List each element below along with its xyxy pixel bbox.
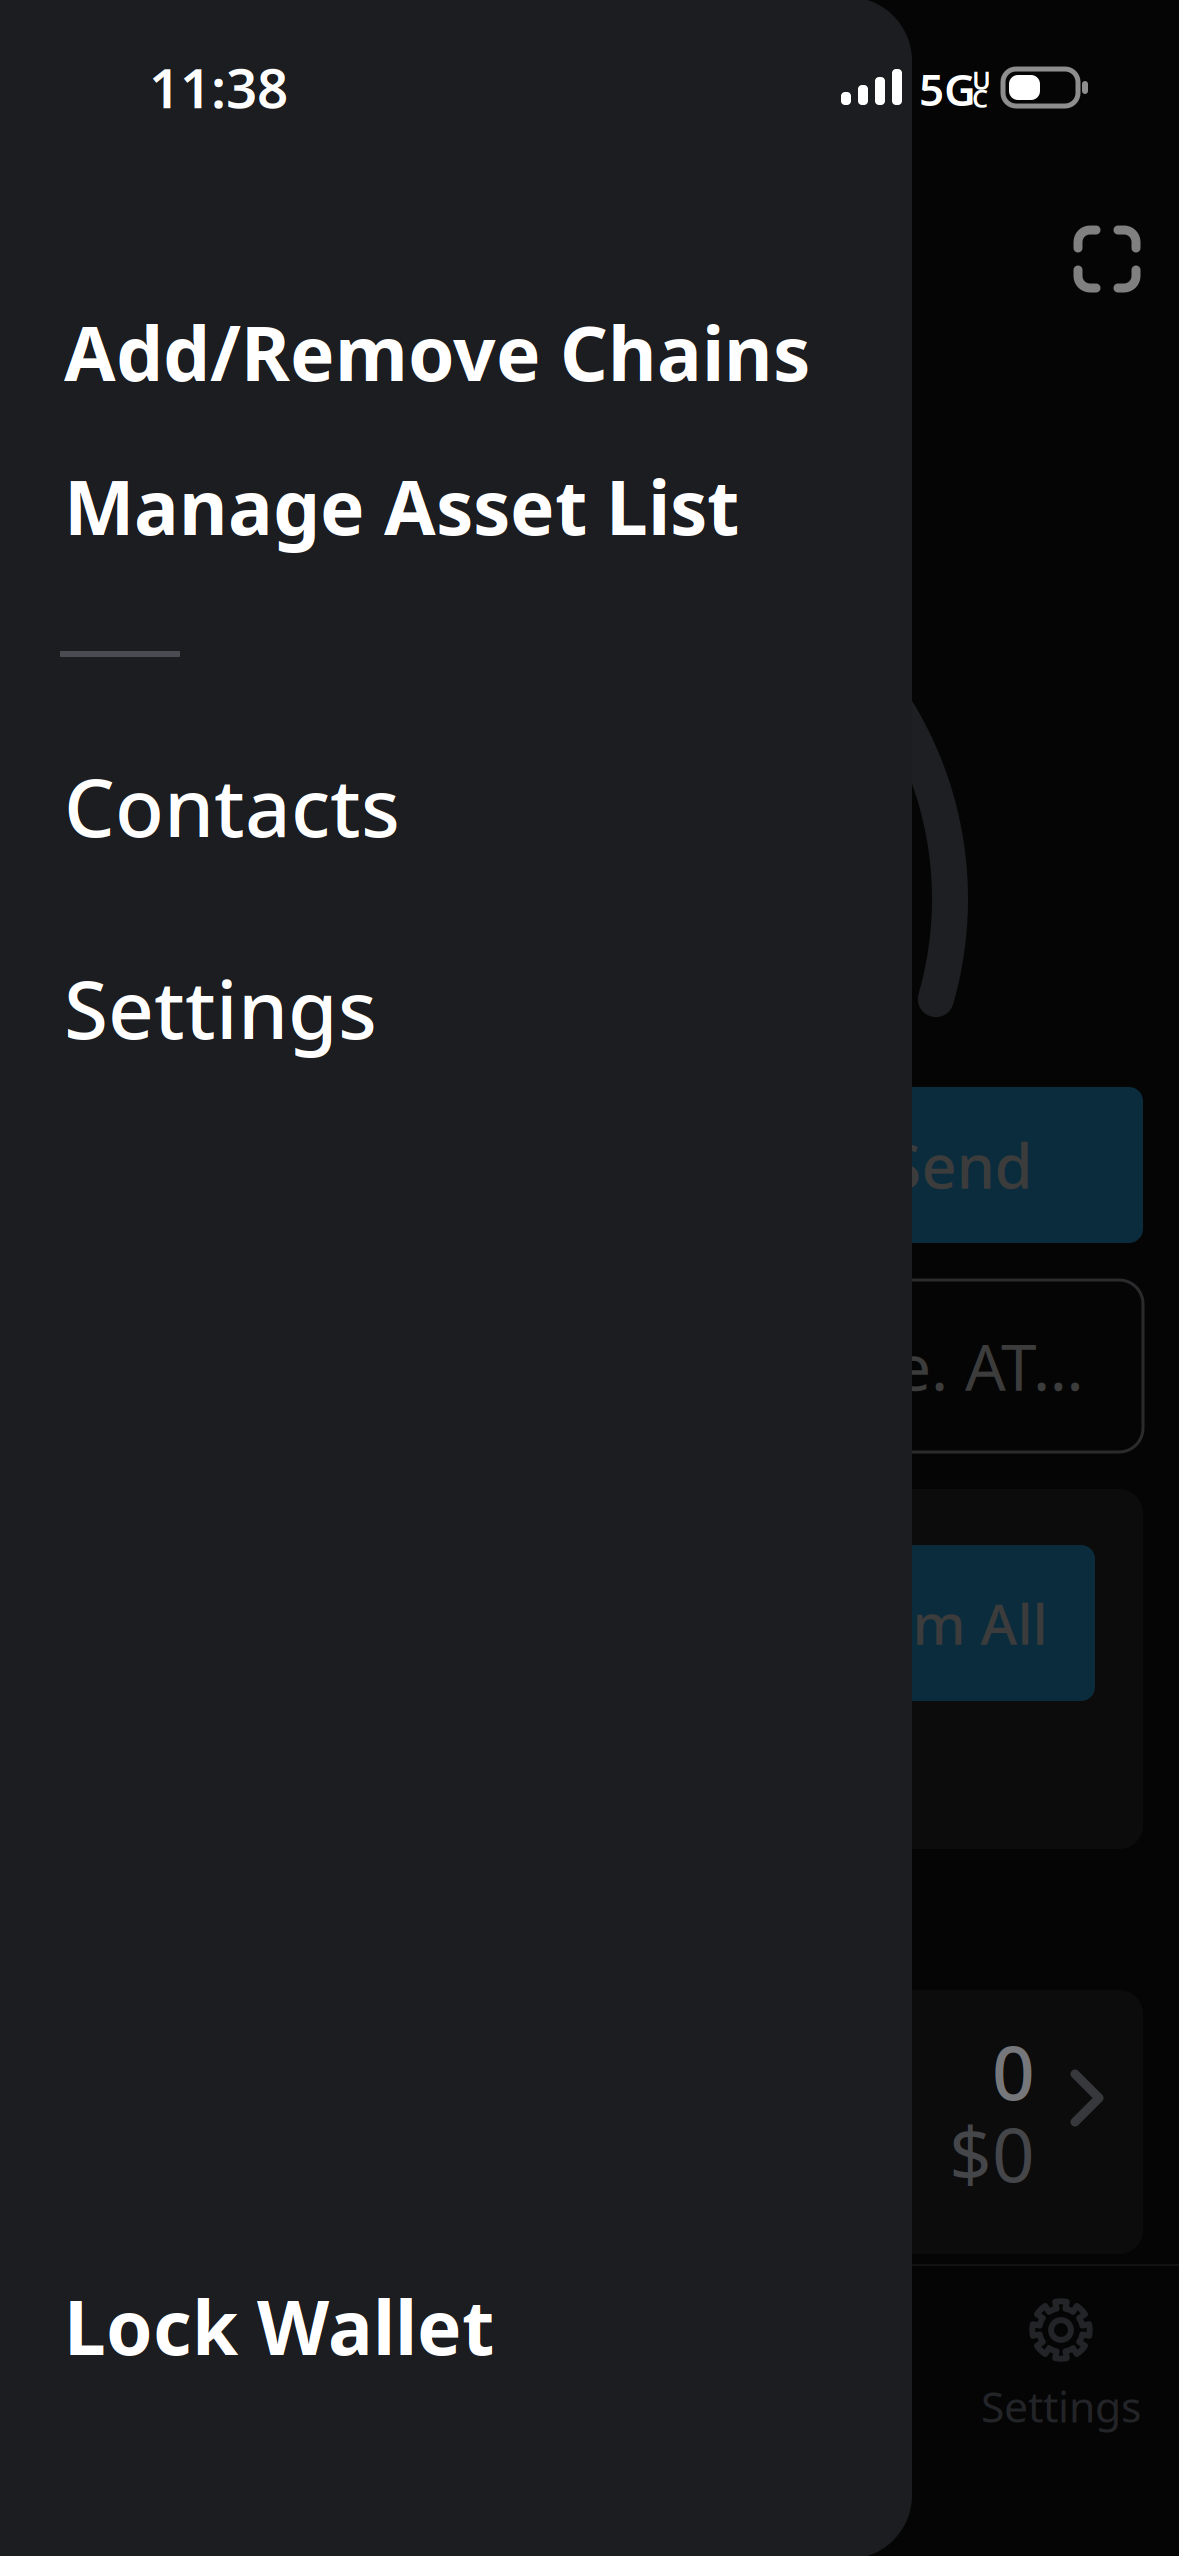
staticText: Name. AT… xyxy=(750,1323,1084,1408)
staticText: Lock Wallet xyxy=(64,2276,494,2376)
staticText: Settings xyxy=(981,2378,1141,2434)
staticText: U xyxy=(972,63,991,97)
staticText: $0 xyxy=(949,2103,1035,2203)
button[interactable]: Send xyxy=(777,1087,1143,1243)
button[interactable]: Contacts xyxy=(0,750,912,862)
staticText: 5G xyxy=(919,60,976,118)
staticText: Claim All xyxy=(814,1586,1047,1660)
staticText: Settings xyxy=(64,955,377,1061)
button[interactable]: 0 xyxy=(562,1990,1143,2254)
staticText: C xyxy=(972,81,988,115)
staticText: Send xyxy=(887,1124,1032,1206)
staticText: Add/Remove Chains xyxy=(64,302,810,402)
button[interactable]: Manage Asset List xyxy=(0,450,912,562)
button[interactable]: Settings xyxy=(0,952,912,1064)
button[interactable]: Scan xyxy=(1074,226,1140,292)
staticText: 0 xyxy=(992,2021,1035,2121)
button[interactable]: Lock Wallet xyxy=(0,2270,912,2382)
staticText: 11:38 xyxy=(149,51,288,123)
button[interactable]: Add/Remove Chains xyxy=(0,296,912,408)
staticText: Manage Asset List xyxy=(64,456,739,556)
staticText: Contacts xyxy=(64,753,400,859)
button[interactable]: Settings xyxy=(959,2286,1163,2446)
button[interactable]: Claim All xyxy=(767,1545,1095,1701)
